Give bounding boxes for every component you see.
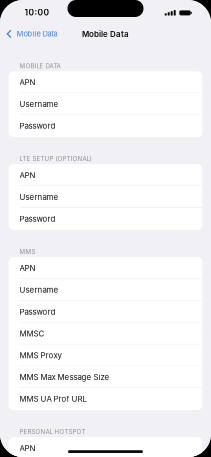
button[interactable]: APN [9,71,202,93]
button[interactable]: Password [9,301,202,323]
button[interactable]: MMS UA Prof URL [9,388,202,410]
button[interactable]: Password [9,115,202,137]
staticText: Mobile Data [16,29,57,38]
staticText: APN [20,443,36,453]
button[interactable]: APN [9,437,202,457]
button[interactable]: Username [9,186,202,208]
staticText: Username [20,99,59,109]
staticText: Password [20,214,56,224]
staticText: MMSC [20,329,45,338]
staticText: MMS Proxy [20,351,62,360]
button[interactable]: MMS Max Message Size [9,366,202,388]
staticText: MMS Max Message Size [20,372,110,382]
staticText: Username [20,192,59,202]
staticText: MOBILE DATA [20,62,61,70]
button[interactable]: MMSC [9,323,202,344]
button[interactable]: APN [9,164,202,186]
staticText: Mobile Data [82,29,129,39]
staticText: MMS UA Prof URL [20,394,87,404]
button[interactable]: MMS Proxy [9,344,202,366]
staticText: 10:00 [25,7,50,18]
staticText: LTE SETUP (OPTIONAL) [20,155,92,163]
staticText: Password [20,307,56,316]
button[interactable]: Password [9,208,202,230]
staticText: APN [20,78,36,87]
staticText: PERSONAL HOTSPOT [20,428,86,436]
button[interactable]: Username [9,93,202,115]
staticText: MMS [20,248,36,255]
button[interactable]: APN [9,257,202,279]
staticText: Username [20,285,59,295]
staticText: APN [20,263,36,273]
staticText: APN [20,170,36,180]
button[interactable]: Username [9,279,202,301]
button[interactable]: Mobile Data [0,28,57,37]
staticText: Password [20,121,56,131]
